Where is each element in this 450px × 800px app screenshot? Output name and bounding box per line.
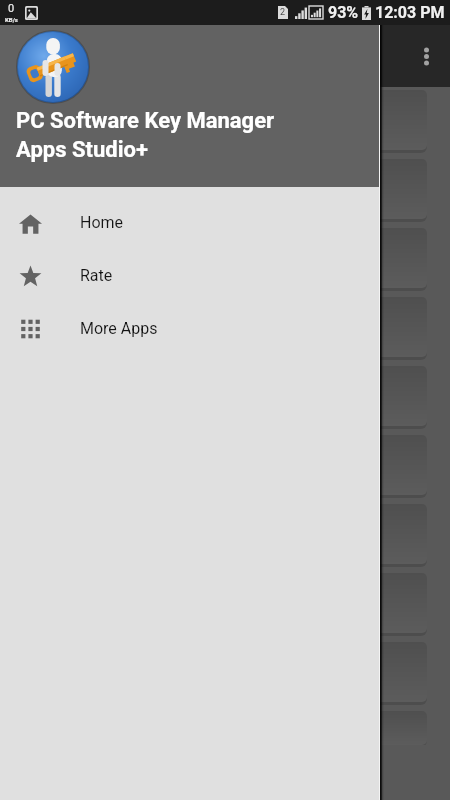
staticText: Rate xyxy=(80,266,113,285)
staticText: Apps Studio+ xyxy=(16,137,148,163)
button[interactable] xyxy=(4,297,427,357)
staticText: KB/s xyxy=(5,16,18,23)
button[interactable] xyxy=(4,435,427,495)
staticText: 12:03 PM xyxy=(375,3,445,22)
button[interactable] xyxy=(4,711,427,745)
button[interactable] xyxy=(4,504,427,564)
button[interactable] xyxy=(4,642,427,702)
button[interactable] xyxy=(4,228,427,288)
button[interactable]: More Apps xyxy=(0,302,380,355)
button[interactable]: Home xyxy=(0,196,380,249)
staticText: 2 xyxy=(280,7,286,18)
staticText: PC Software Key Manager xyxy=(16,108,275,134)
staticText: 0 xyxy=(8,2,15,15)
button[interactable]: More options xyxy=(409,39,443,73)
button[interactable]: Rate xyxy=(0,249,380,302)
staticText: 93% xyxy=(328,3,359,22)
button[interactable] xyxy=(4,366,427,426)
button[interactable] xyxy=(4,159,427,219)
staticText: More Apps xyxy=(80,319,158,338)
button[interactable] xyxy=(4,573,427,633)
staticText: Home xyxy=(80,213,124,232)
button[interactable] xyxy=(4,90,427,150)
